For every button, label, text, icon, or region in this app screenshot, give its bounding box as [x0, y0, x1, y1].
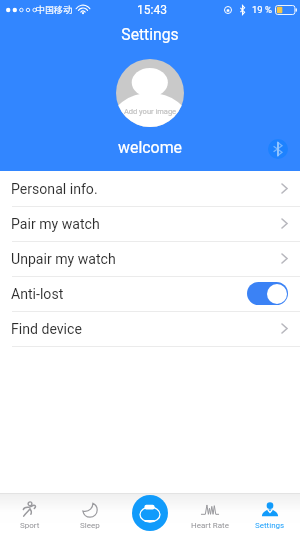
button[interactable]: Settings [240, 493, 300, 533]
button[interactable]: Add your image [116, 59, 184, 127]
button[interactable]: Bluetooth [268, 139, 288, 159]
button[interactable]: Heart Rate [180, 493, 240, 533]
staticText: welcome [0, 138, 300, 157]
staticText: Anti-lost [11, 286, 64, 303]
staticText: Pair my watch [11, 216, 100, 233]
staticText: Unpair my watch [11, 251, 116, 268]
staticText: Add your image [0, 107, 300, 116]
staticText: 中国移动 [36, 4, 72, 15]
staticText: Settings [0, 25, 300, 43]
staticText: Settings [255, 521, 285, 530]
button[interactable]: Find device [0, 312, 300, 347]
staticText: Find device [11, 321, 82, 338]
button[interactable]: Personal info. [0, 172, 300, 207]
staticText: Sport [20, 521, 40, 530]
staticText: 15:43 [137, 3, 167, 17]
staticText: Heart Rate [191, 521, 229, 530]
button[interactable]: My watch [132, 495, 168, 531]
staticText: 19 % [252, 4, 272, 15]
button[interactable]: Sleep [60, 493, 120, 533]
button[interactable]: Anti-lost [0, 277, 300, 312]
button[interactable]: Unpair my watch [0, 242, 300, 277]
staticText: Sleep [80, 521, 100, 530]
staticText: Personal info. [11, 181, 98, 198]
button[interactable]: Anti-lost toggle [247, 282, 288, 305]
button[interactable]: Pair my watch [0, 207, 300, 242]
button[interactable]: Sport [0, 493, 60, 533]
button[interactable]: My watch [120, 493, 180, 533]
